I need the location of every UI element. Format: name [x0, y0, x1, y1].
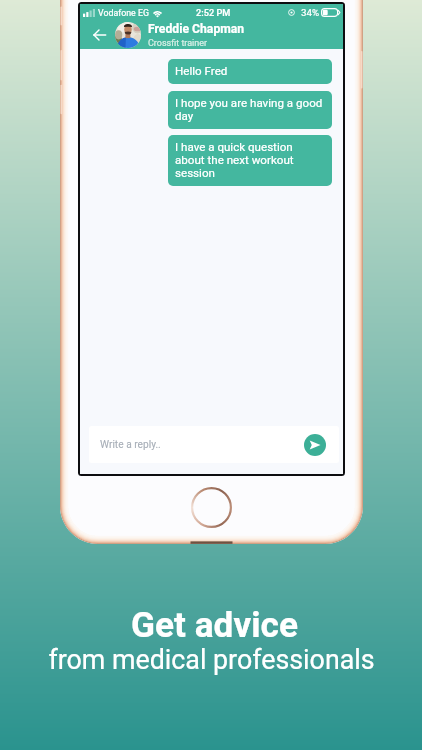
button[interactable]: Hello Fred: [168, 59, 332, 84]
staticText: 2:52 PM: [196, 7, 231, 18]
button[interactable]: Back: [90, 26, 108, 44]
staticText: from medical professionals: [48, 644, 375, 675]
staticText: I have a quick question about the next w…: [175, 141, 325, 180]
staticText: Get advice: [131, 604, 298, 645]
staticText: 34%: [301, 7, 319, 18]
staticText: Freddie Chapman: [148, 22, 245, 36]
button[interactable]: I have a quick question about the next w…: [168, 135, 332, 186]
staticText: Write a reply..: [100, 439, 161, 451]
staticText: I hope you are having a good day: [175, 97, 325, 123]
staticText: Crossfit trainer: [148, 38, 208, 49]
staticText: Hello Fred: [175, 65, 228, 78]
button[interactable]: Send: [304, 434, 326, 456]
staticText: Vodafone EG: [98, 8, 149, 18]
button[interactable]: Write a reply..: [89, 426, 339, 463]
button[interactable]: I hope you are having a good day: [168, 91, 332, 129]
